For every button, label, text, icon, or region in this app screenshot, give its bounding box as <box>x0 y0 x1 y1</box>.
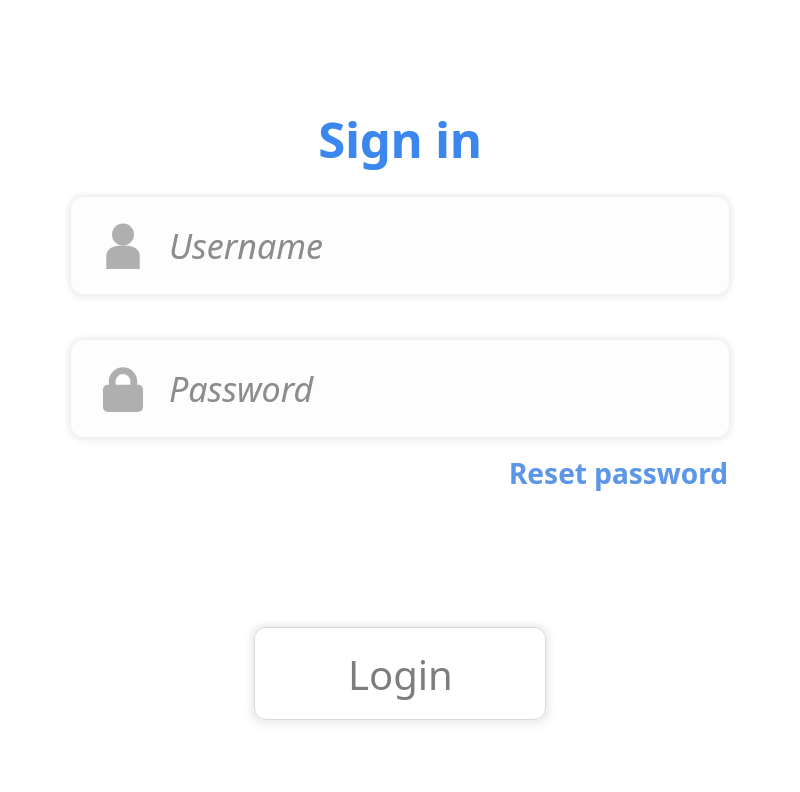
staticText: Login <box>348 647 453 701</box>
button[interactable]: Login <box>254 627 546 720</box>
other: Password <box>101 365 145 412</box>
other: Username <box>101 222 145 269</box>
button[interactable]: Password <box>70 339 730 438</box>
staticText: Reset password <box>509 454 728 492</box>
staticText: Password <box>169 366 314 412</box>
button[interactable]: Reset password <box>507 450 730 496</box>
button[interactable]: Username <box>70 196 730 295</box>
staticText: Sign in <box>70 106 730 173</box>
staticText: Username <box>169 223 323 269</box>
